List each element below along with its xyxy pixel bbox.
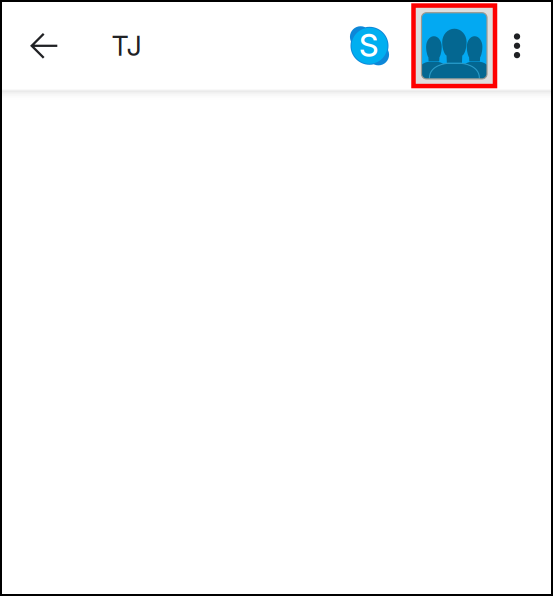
- button[interactable]: Group profile picture: [413, 5, 495, 86]
- staticText: TJ: [111, 29, 141, 62]
- button[interactable]: Skype: [343, 20, 395, 72]
- button[interactable]: Back: [18, 20, 70, 72]
- button[interactable]: More options: [495, 20, 539, 72]
- staticText: S: [359, 27, 379, 64]
